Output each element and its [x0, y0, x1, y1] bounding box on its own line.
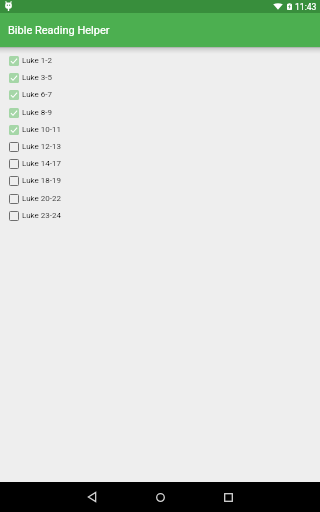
button[interactable]: Luke 23-24: [0, 207, 320, 224]
staticText: Luke 8-9: [22, 108, 52, 117]
staticText: Luke 3-5: [22, 73, 52, 82]
button[interactable]: Luke 12-13: [0, 138, 320, 155]
staticText: Luke 12-13: [22, 142, 61, 151]
button[interactable]: Luke 18-19: [0, 172, 320, 189]
staticText: Luke 10-11: [22, 125, 61, 134]
button[interactable]: Luke 20-22: [0, 190, 320, 207]
staticText: Luke 1-2: [22, 56, 52, 65]
button[interactable]: Luke 10-11: [0, 121, 320, 138]
button[interactable]: Recent apps: [210, 482, 246, 512]
button[interactable]: Home: [142, 482, 178, 512]
staticText: Bible Reading Helper: [8, 24, 110, 37]
staticText: Luke 20-22: [22, 194, 61, 203]
staticText: Luke 23-24: [22, 211, 61, 220]
button[interactable]: Luke 6-7: [0, 86, 320, 103]
staticText: Luke 14-17: [22, 159, 61, 168]
button[interactable]: Back: [74, 482, 110, 512]
button[interactable]: Luke 8-9: [0, 104, 320, 121]
staticText: Luke 18-19: [22, 176, 61, 185]
staticText: 11:43: [295, 2, 317, 12]
button[interactable]: Luke 14-17: [0, 155, 320, 172]
button[interactable]: Luke 1-2: [0, 52, 320, 69]
staticText: Luke 6-7: [22, 90, 52, 99]
button[interactable]: Luke 3-5: [0, 69, 320, 86]
